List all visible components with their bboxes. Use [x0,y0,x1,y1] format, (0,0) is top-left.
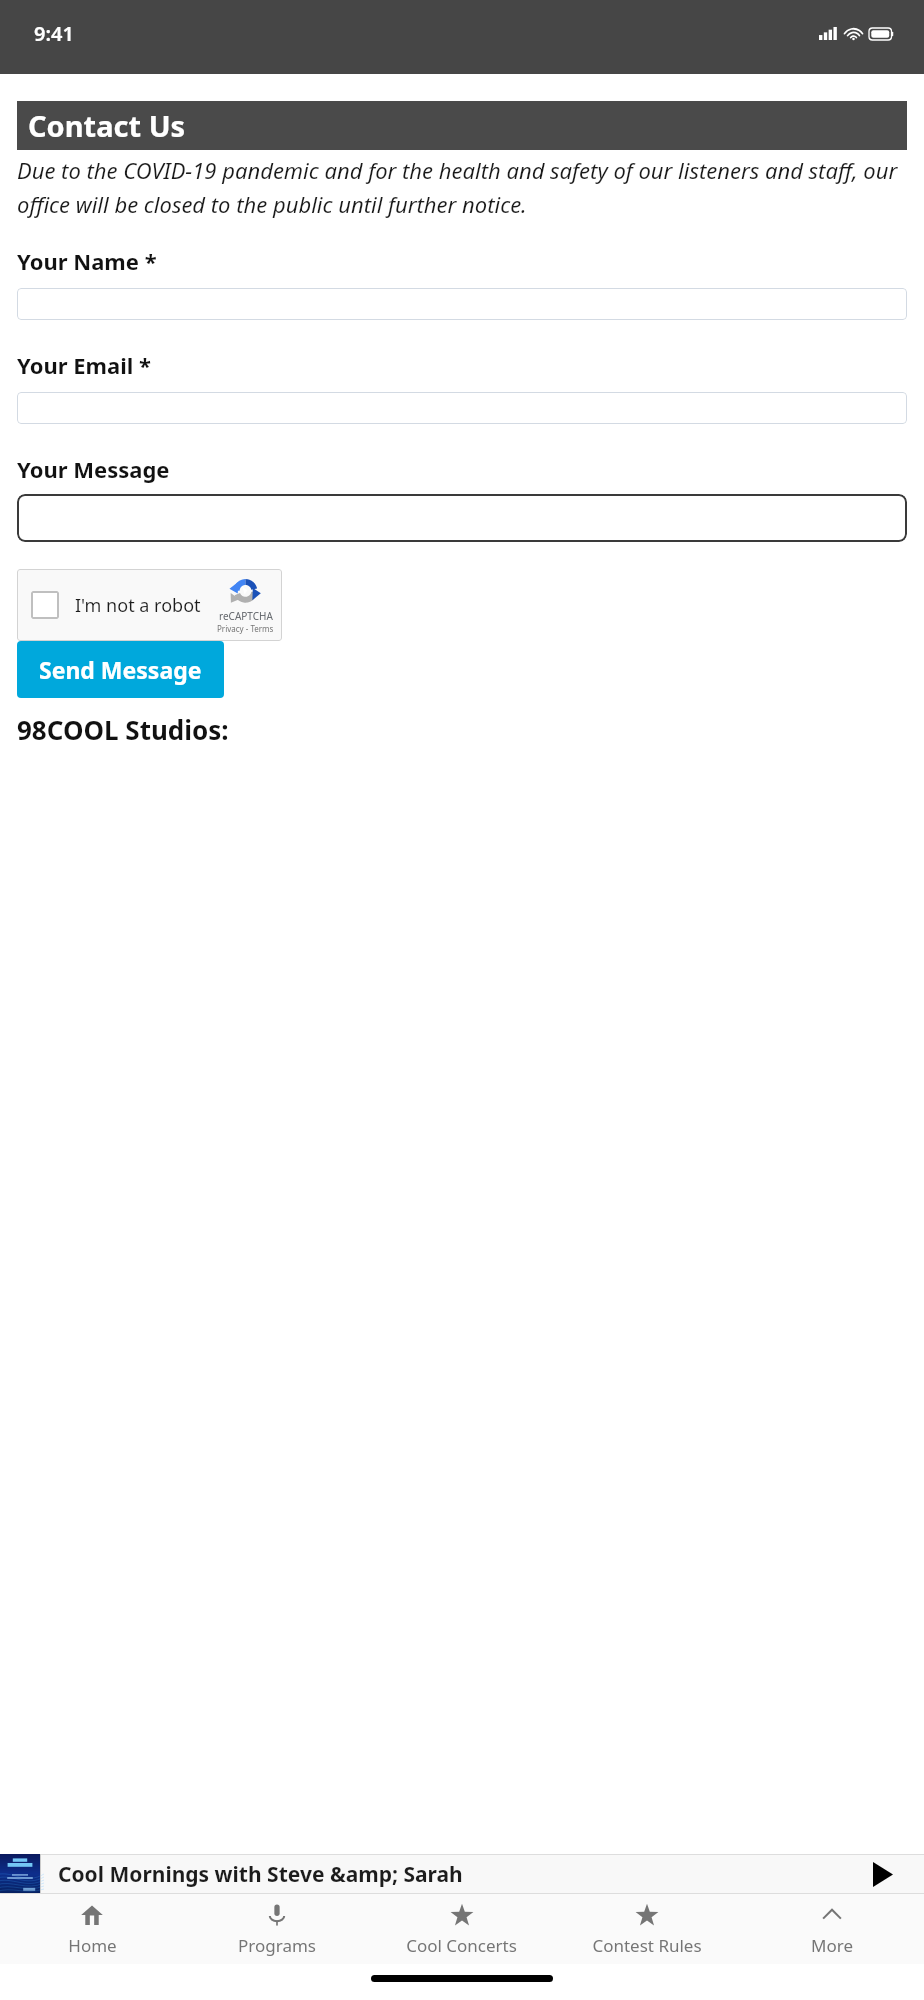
staticText: Your Email * [17,350,152,380]
staticText: Cool Mornings with Steve &amp; Sarah [58,1860,866,1889]
button[interactable]: Cool Concerts [369,1894,554,1964]
button[interactable]: More [739,1894,924,1964]
button[interactable]: Home [0,1894,184,1964]
staticText: Programs [238,1934,316,1957]
staticText: Contact Us [28,106,186,145]
staticText: I'm not a robot [75,593,201,618]
staticText: reCAPTCHA [219,609,273,623]
button[interactable]: Programs [184,1894,369,1964]
staticText: More [811,1934,853,1957]
staticText: Your Message [17,454,170,484]
button[interactable] [17,392,907,424]
button[interactable]: Play [866,1857,900,1891]
staticText: Contest Rules [592,1934,702,1957]
staticText: Your Name * [17,246,157,276]
staticText: Cool Concerts [406,1934,517,1957]
button[interactable] [17,494,907,542]
button[interactable] [17,288,907,320]
staticText: 9:41 [34,20,74,47]
staticText: 98COOL Studios: [17,712,229,747]
staticText: Due to the COVID-19 pandemic and for the… [17,155,907,219]
button[interactable]: Send Message [17,641,224,698]
button[interactable]: Contest Rules [554,1894,739,1964]
button[interactable]: I'm not a robot [17,569,282,641]
staticText: Privacy - Terms [217,623,274,634]
staticText: Send Message [39,654,202,685]
staticText: Home [68,1934,117,1957]
